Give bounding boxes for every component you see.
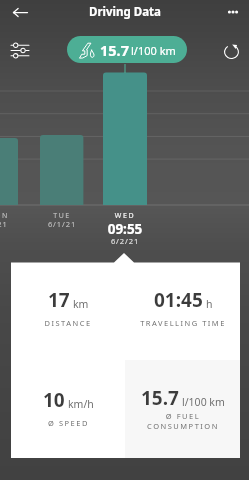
staticText: 10 bbox=[43, 387, 65, 413]
button[interactable]: 10 bbox=[11, 360, 125, 458]
staticText: 15.7 bbox=[141, 385, 179, 411]
staticText: Ø FUEL CONSUMPTION bbox=[147, 411, 219, 431]
button[interactable]: Filter settings bbox=[4, 36, 36, 64]
staticText: l/100 km bbox=[182, 395, 225, 409]
button[interactable]: 01:45 bbox=[125, 263, 240, 360]
staticText: h bbox=[206, 297, 213, 311]
button[interactable]: Refresh bbox=[218, 38, 244, 64]
staticText: 01:45 bbox=[154, 287, 203, 313]
staticText: 09:55 bbox=[103, 220, 147, 238]
staticText: km bbox=[73, 297, 89, 311]
button[interactable]: More options bbox=[221, 0, 245, 24]
staticText: TUE bbox=[40, 211, 84, 221]
staticText: TRAVELLING TIME bbox=[140, 318, 226, 328]
staticText: Ø SPEED bbox=[48, 418, 89, 428]
staticText: 6/2/21 bbox=[103, 236, 147, 246]
button[interactable]: Back bbox=[5, 0, 35, 24]
staticText: 6/1/21 bbox=[40, 219, 84, 229]
staticText: l/100 km bbox=[131, 43, 176, 58]
staticText: MON bbox=[0, 211, 20, 221]
staticText: WED bbox=[103, 211, 147, 221]
button[interactable]: 17 bbox=[11, 263, 125, 360]
staticText: 6/21 bbox=[0, 219, 20, 229]
staticText: km/h bbox=[68, 397, 94, 411]
staticText: Driving Data bbox=[89, 4, 161, 20]
button[interactable]: 15.7 bbox=[125, 360, 240, 458]
button[interactable]: 15.7 bbox=[67, 36, 187, 63]
staticText: DISTANCE bbox=[44, 318, 92, 328]
staticText: 15.7 bbox=[100, 40, 129, 60]
staticText: 17 bbox=[48, 287, 70, 313]
